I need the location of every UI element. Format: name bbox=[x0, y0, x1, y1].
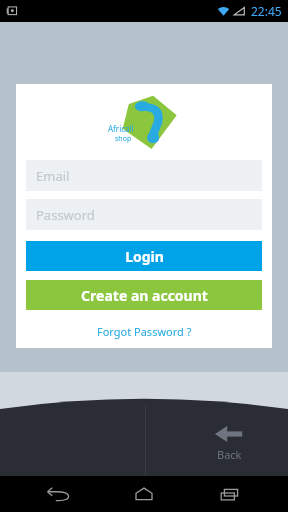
staticText: Password bbox=[36, 206, 95, 224]
staticText: Email bbox=[36, 167, 70, 185]
button[interactable]: Password bbox=[26, 199, 262, 230]
staticText: Africall bbox=[108, 123, 134, 134]
staticText: Back bbox=[217, 447, 242, 462]
staticText: 22:45 bbox=[251, 3, 282, 19]
button[interactable]: Back bbox=[214, 424, 244, 462]
staticText: Forgot Password ? bbox=[97, 324, 192, 339]
staticText: shop bbox=[115, 134, 132, 144]
staticText: Create an account bbox=[81, 286, 208, 305]
button[interactable]: Forgot Password ? bbox=[26, 320, 262, 342]
button[interactable]: Recent apps bbox=[202, 476, 258, 512]
button[interactable]: Back bbox=[30, 476, 86, 512]
button[interactable]: Home bbox=[116, 476, 172, 512]
staticText: Login bbox=[125, 247, 164, 266]
button[interactable]: Email bbox=[26, 160, 262, 191]
button[interactable]: Login bbox=[26, 241, 262, 271]
button[interactable]: Create an account bbox=[26, 280, 262, 310]
